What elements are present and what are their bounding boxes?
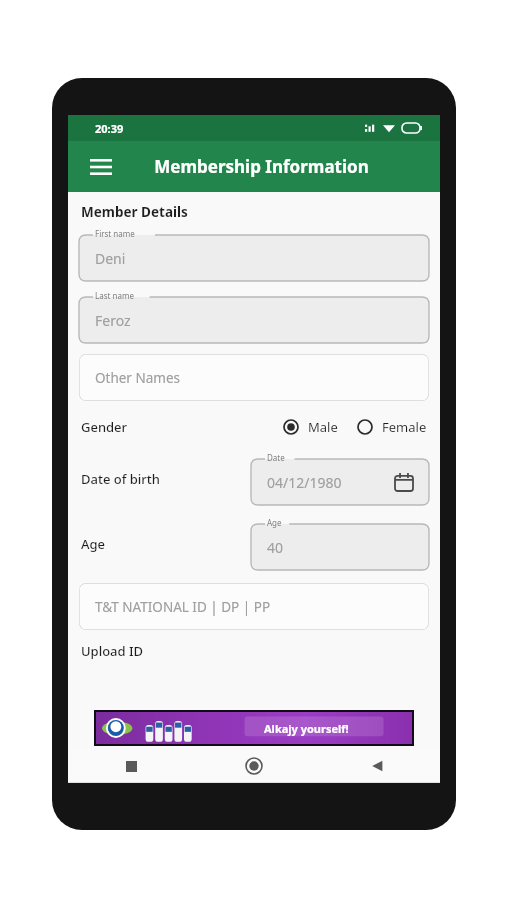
staticText: Upload ID (81, 642, 144, 660)
staticText: Female (382, 418, 427, 436)
button[interactable]: Other Names (79, 354, 429, 401)
staticText: Deni (95, 249, 126, 268)
staticText: Member Details (81, 203, 188, 221)
staticText: First name (95, 228, 135, 239)
staticText: Date of birth (81, 470, 160, 488)
staticText: Membership Information (154, 155, 369, 178)
button[interactable]: Recent apps (114, 749, 148, 783)
staticText: Gender (81, 418, 128, 436)
button[interactable]: First name (79, 229, 429, 281)
staticText: Last name (95, 290, 134, 301)
button[interactable]: Age (251, 518, 429, 570)
button[interactable]: Male (283, 418, 338, 436)
staticText: 40 (267, 538, 284, 557)
button[interactable]: T&T NATIONAL ID | DP | PP (79, 583, 429, 630)
staticText: Age (267, 517, 282, 528)
button[interactable]: Pick date (391, 469, 417, 495)
button[interactable]: Date (251, 453, 429, 505)
staticText: Age (81, 535, 106, 553)
button[interactable]: Female (357, 418, 427, 436)
staticText: Male (308, 418, 338, 436)
staticText: T&T NATIONAL ID | DP | PP (95, 598, 271, 616)
staticText: Other Names (95, 369, 180, 387)
staticText: Feroz (95, 311, 131, 330)
staticText: Date (267, 452, 285, 463)
staticText: 04/12/1980 (267, 473, 342, 492)
button[interactable]: Home (237, 749, 271, 783)
button[interactable]: Advertisement (94, 710, 414, 746)
button[interactable]: Last name (79, 291, 429, 343)
button[interactable]: Back (360, 749, 394, 783)
staticText: 20:39 (95, 121, 124, 136)
staticText: Alkajy yourself! (264, 721, 349, 736)
button[interactable]: Open navigation menu (80, 146, 122, 188)
